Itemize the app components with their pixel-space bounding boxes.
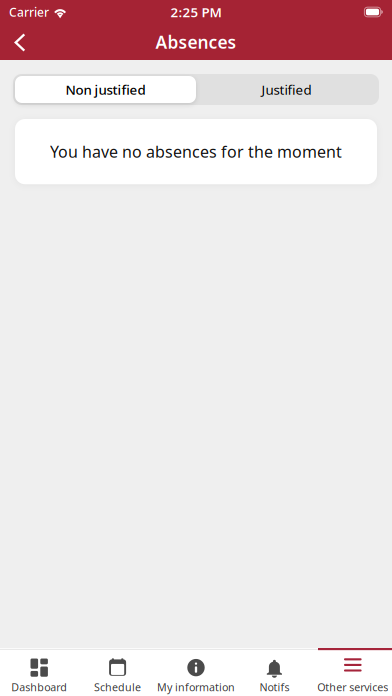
staticText: Carrier (9, 4, 49, 20)
staticText: 2:25 PM (170, 3, 221, 21)
staticText: Absences (155, 30, 236, 53)
button[interactable]: Notifs (235, 648, 314, 696)
staticText: Notifs (259, 680, 289, 694)
staticText: Dashboard (11, 680, 67, 694)
button[interactable]: Dashboard (0, 648, 78, 696)
button[interactable]: Back (0, 24, 42, 60)
button[interactable]: My information (157, 648, 235, 696)
staticText: Non justified (65, 81, 145, 98)
button[interactable]: Other services (314, 648, 392, 696)
staticText: My information (157, 680, 235, 694)
button[interactable]: Justified (196, 76, 377, 103)
staticText: Schedule (94, 680, 141, 694)
staticText: Other services (317, 680, 388, 694)
button[interactable]: Non justified (15, 76, 196, 103)
staticText: Justified (261, 81, 311, 98)
staticText: You have no absences for the moment (50, 141, 342, 162)
button[interactable]: Schedule (78, 648, 157, 696)
